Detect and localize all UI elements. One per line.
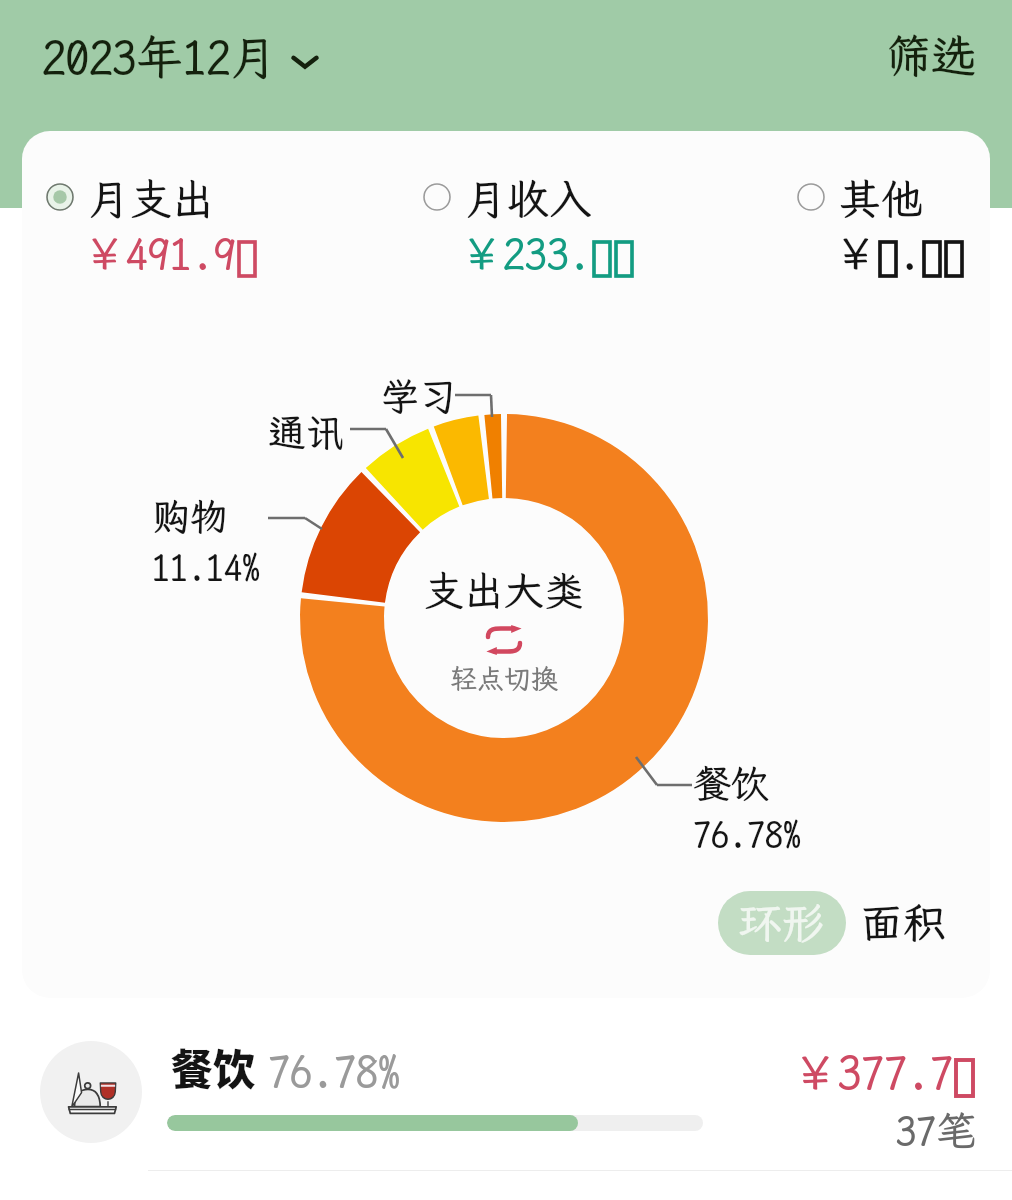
staticText: 4 [126,229,148,279]
staticText: ￥ [460,229,503,279]
staticText: 面积 [860,898,946,948]
staticText: 筛选 [886,30,977,83]
staticText: 其他 [839,175,924,224]
staticText: 月收入 [465,175,592,224]
staticText: 通讯 [268,411,345,455]
staticText: . [192,229,214,279]
button[interactable]: 环形 [718,891,846,955]
staticText: ￥ [834,229,877,279]
staticText: ￥ [792,1046,838,1100]
staticText: 3 [547,229,569,279]
staticText: 7 [930,1046,953,1100]
staticText: 76.78% [693,814,801,856]
button[interactable]: 面积 [860,887,946,959]
staticText: 3 [525,229,547,279]
staticText: 餐饮 [693,762,770,806]
other: Select month [289,45,321,77]
button[interactable]: 筛选 [886,30,977,83]
staticText: 购物 [152,495,229,539]
staticText: 环形 [739,898,825,948]
staticText: . [899,229,921,279]
button[interactable]: 支出大类 [304,568,704,695]
staticText: 月支出 [88,175,215,224]
staticText: . [907,1046,930,1100]
staticText: 7 [861,1046,884,1100]
button[interactable]: 餐饮 [0,1010,1012,1200]
staticText: 76.78% [268,1046,400,1097]
staticText: 支出大类 [424,568,584,615]
staticText: 2023年12月 [42,30,277,85]
staticText: 2 [503,229,525,279]
staticText: 37笔 [896,1108,976,1155]
staticText: 轻点切换 [450,663,558,695]
staticText: 1 [170,229,192,279]
staticText: 7 [884,1046,907,1100]
staticText: 3 [838,1046,861,1100]
staticText: 9 [214,229,236,279]
button[interactable]: 月收入 [423,175,598,279]
staticText: 11.14% [152,547,260,589]
staticText: ￥ [83,229,126,279]
button[interactable]: 2023年12月 [42,30,321,85]
button[interactable]: 其他 [797,175,928,279]
button[interactable]: 月支出 [46,175,221,279]
staticText: 餐饮 [171,1036,256,1097]
staticText: 学习 [381,375,458,419]
button[interactable]: Expense category donut chart [22,131,990,998]
staticText: 9 [148,229,170,279]
staticText: . [569,229,591,279]
